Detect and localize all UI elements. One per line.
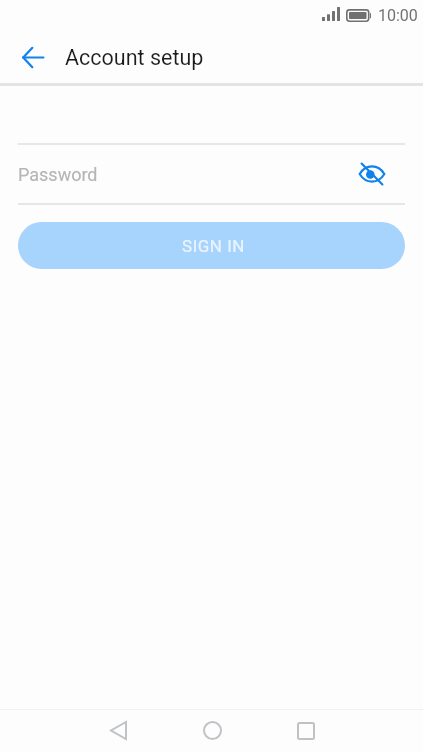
staticText: SIGN IN [182, 236, 245, 256]
staticText: Password [18, 164, 98, 185]
button[interactable]: Back [10, 36, 54, 80]
staticText: 10:00 [378, 6, 418, 25]
button[interactable]: Recents [281, 709, 331, 751]
button[interactable]: SIGN IN [18, 222, 405, 269]
button[interactable]: Home [187, 709, 237, 751]
staticText: Account setup [65, 45, 204, 70]
button[interactable]: Back [93, 709, 143, 751]
button[interactable]: Show password [353, 155, 391, 193]
